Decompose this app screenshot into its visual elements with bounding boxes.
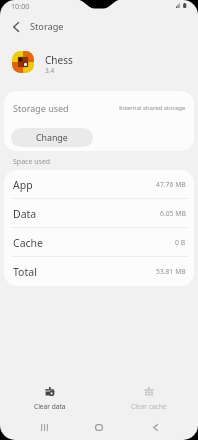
staticText: 10:00 [11, 1, 30, 11]
button[interactable]: Home [83, 415, 115, 439]
staticText: 0 B [175, 238, 186, 247]
staticText: Chess [45, 53, 73, 67]
button[interactable]: Clear cache [99, 379, 198, 413]
button[interactable]: Cache [4, 228, 194, 257]
button[interactable]: Recent apps [28, 415, 60, 439]
staticText: Space used [13, 157, 51, 167]
button[interactable]: Back [139, 415, 171, 439]
staticText: Cache [13, 236, 43, 250]
button[interactable]: App [4, 170, 194, 199]
staticText: 3.4 [45, 66, 55, 75]
staticText: Data [13, 207, 37, 221]
staticText: Storage [30, 20, 64, 33]
staticText: Change [36, 132, 68, 144]
button[interactable]: Change [11, 128, 93, 147]
button[interactable]: Data [4, 199, 194, 228]
staticText: 47.76 MB [156, 180, 186, 189]
staticText: 53.81 MB [156, 267, 186, 276]
staticText: Clear data [34, 402, 66, 411]
staticText: 6.05 MB [160, 209, 186, 218]
staticText: Storage used [13, 102, 69, 114]
button[interactable]: Clear data [0, 379, 99, 413]
staticText: App [13, 178, 33, 192]
staticText: Internal shared storage [119, 104, 186, 112]
staticText: Total [13, 265, 37, 279]
staticText: Clear cache [131, 402, 167, 411]
button[interactable]: Total [4, 257, 194, 286]
button[interactable]: Navigate up [4, 19, 28, 35]
